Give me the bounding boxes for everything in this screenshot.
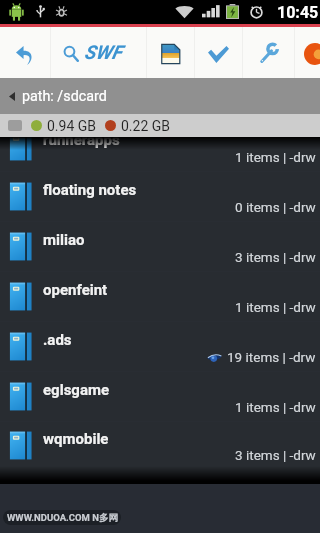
button[interactable]: miliao: [0, 222, 320, 271]
button[interactable]: wqmobile: [0, 422, 320, 469]
button[interactable]: Undo: [0, 27, 50, 78]
button[interactable]: Select all: [195, 27, 242, 78]
button[interactable]: floating notes: [0, 172, 320, 221]
button[interactable]: SWF: [51, 27, 146, 78]
button[interactable]: .ads: [0, 322, 320, 371]
staticText: WWW.NDUOA.COM N多网: [7, 512, 118, 524]
staticText: 1 items | -drw: [235, 299, 316, 315]
staticText: 1 items | -drw: [235, 399, 316, 415]
staticText: 19 items | -drw: [227, 349, 316, 365]
staticText: 0.94 GB: [47, 118, 97, 134]
button[interactable]: runnerapps: [0, 137, 320, 171]
button[interactable]: Settings: [243, 27, 294, 78]
staticText: runnerapps: [43, 137, 120, 149]
staticText: floating notes: [43, 181, 137, 199]
staticText: 10:45: [277, 3, 319, 22]
staticText: miliao: [43, 231, 85, 249]
button[interactable]: eglsgame: [0, 372, 320, 421]
staticText: 0 items | -drw: [235, 199, 316, 215]
staticText: path: /sdcard: [22, 88, 107, 105]
staticText: 3 items | -drw: [235, 447, 316, 463]
staticText: 1 items | -drw: [235, 149, 316, 165]
button[interactable]: Browser: [295, 27, 320, 78]
button[interactable]: New folder: [147, 27, 194, 78]
staticText: .ads: [43, 331, 72, 349]
staticText: openfeint: [43, 281, 108, 299]
staticText: eglsgame: [43, 381, 110, 399]
staticText: 0.22 GB: [121, 118, 171, 134]
button[interactable]: openfeint: [0, 272, 320, 321]
button[interactable]: path: /sdcard: [0, 78, 320, 114]
staticText: 3 items | -drw: [235, 249, 316, 265]
staticText: SWF: [84, 41, 122, 63]
staticText: wqmobile: [43, 430, 109, 448]
